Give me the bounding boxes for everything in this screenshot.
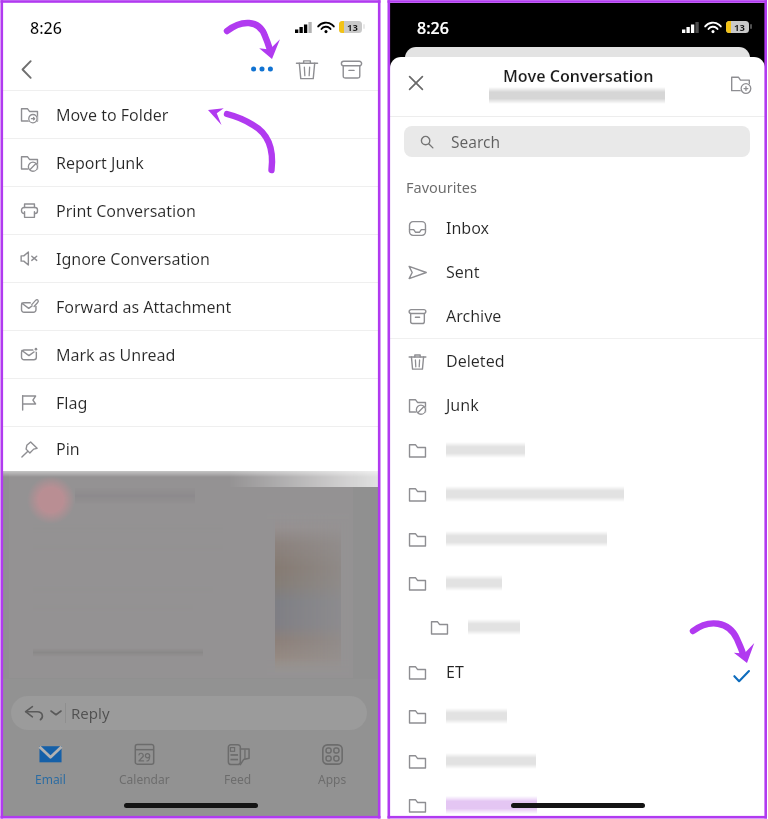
button[interactable]: Archive bbox=[390, 294, 765, 338]
button[interactable]: Sent bbox=[390, 250, 765, 294]
button[interactable]: Archive bbox=[331, 49, 371, 89]
button[interactable]: More options bbox=[242, 49, 282, 89]
button[interactable]: Flag bbox=[3, 379, 379, 426]
staticText: Print Conversation bbox=[56, 200, 196, 222]
button[interactable]: Ignore Conversation bbox=[3, 235, 379, 282]
staticText: Favourites bbox=[406, 177, 477, 197]
button[interactable]: New folder bbox=[721, 64, 759, 102]
staticText: Calendar bbox=[119, 771, 170, 787]
button[interactable]: Calendar bbox=[97, 743, 191, 793]
staticText: 13 bbox=[347, 21, 358, 33]
button[interactable]: Pin bbox=[3, 427, 379, 471]
staticText: Deleted bbox=[446, 350, 505, 372]
button[interactable]: Back bbox=[8, 51, 44, 87]
staticText: 8:26 bbox=[417, 17, 449, 39]
button[interactable]: Forward as Attachment bbox=[3, 283, 379, 330]
staticText: Move Conversation bbox=[503, 65, 654, 87]
staticText: Apps bbox=[318, 771, 347, 787]
staticText: Junk bbox=[446, 394, 479, 416]
staticText: 13 bbox=[734, 21, 745, 33]
button[interactable]: Reply bbox=[11, 696, 367, 730]
staticText: Inbox bbox=[446, 217, 489, 239]
button[interactable]: Junk bbox=[390, 383, 765, 427]
staticText: Email bbox=[35, 771, 66, 787]
staticText: Report Junk bbox=[56, 152, 144, 174]
button[interactable]: Delete bbox=[287, 49, 327, 89]
staticText: Archive bbox=[446, 305, 502, 327]
staticText: Pin bbox=[56, 438, 80, 460]
button[interactable]: Apps bbox=[285, 743, 379, 793]
button[interactable]: Print Conversation bbox=[3, 187, 379, 234]
staticText: Reply bbox=[71, 703, 110, 723]
staticText: ET bbox=[446, 661, 464, 683]
staticText: Feed bbox=[224, 771, 252, 787]
staticText: Move to Folder bbox=[56, 104, 169, 126]
staticText: Search bbox=[451, 131, 501, 152]
button[interactable]: Inbox bbox=[390, 206, 765, 250]
staticText: Mark as Unread bbox=[56, 344, 176, 366]
button[interactable]: ET bbox=[390, 650, 765, 694]
staticText: Flag bbox=[56, 392, 88, 414]
button[interactable]: Close bbox=[397, 64, 435, 102]
staticText: Ignore Conversation bbox=[56, 248, 210, 270]
staticText: 8:26 bbox=[30, 17, 62, 39]
button[interactable]: Mark as Unread bbox=[3, 331, 379, 378]
button[interactable]: Search bbox=[404, 126, 750, 157]
button[interactable]: Email bbox=[3, 743, 97, 793]
button[interactable]: Report Junk bbox=[3, 139, 379, 186]
button[interactable]: Deleted bbox=[390, 339, 765, 383]
staticText: Forward as Attachment bbox=[56, 296, 232, 318]
button[interactable]: Move to Folder bbox=[3, 91, 379, 138]
staticText: Sent bbox=[446, 261, 480, 283]
button[interactable]: Feed bbox=[191, 743, 285, 793]
